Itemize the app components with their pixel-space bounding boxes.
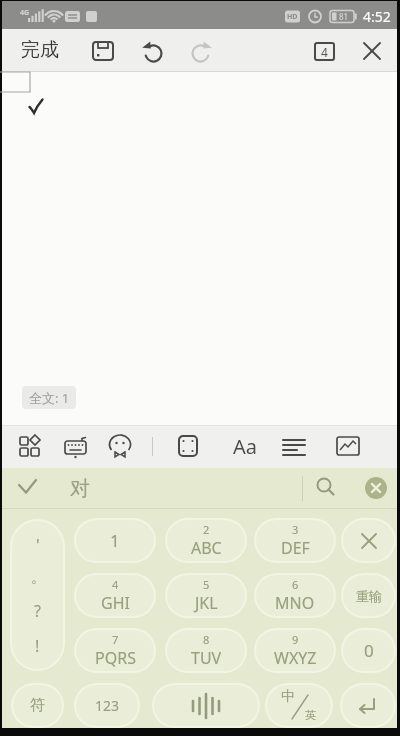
staticText: 0 bbox=[364, 639, 374, 662]
staticText: DEF bbox=[281, 537, 310, 559]
staticText: JKL bbox=[195, 592, 218, 614]
button[interactable] bbox=[280, 432, 308, 460]
staticText: 符 bbox=[30, 696, 45, 715]
button[interactable]: 重输 bbox=[341, 573, 396, 618]
staticText: 8 bbox=[203, 632, 210, 647]
staticText: 4:52 bbox=[363, 7, 391, 26]
staticText: 123 bbox=[95, 696, 120, 715]
button[interactable] bbox=[334, 432, 362, 460]
staticText: 2 bbox=[203, 522, 210, 537]
button[interactable]: 7 bbox=[74, 628, 156, 673]
button[interactable]: 对 bbox=[64, 472, 96, 504]
staticText: 对 bbox=[70, 476, 90, 501]
staticText: 1 bbox=[110, 529, 120, 552]
button[interactable] bbox=[62, 432, 90, 460]
button[interactable]: 中 bbox=[265, 683, 333, 728]
button[interactable] bbox=[14, 475, 44, 503]
staticText: 4 bbox=[112, 577, 119, 592]
button[interactable] bbox=[341, 518, 396, 563]
button[interactable] bbox=[358, 37, 386, 65]
button[interactable] bbox=[106, 432, 134, 460]
button[interactable] bbox=[174, 432, 202, 460]
button[interactable]: 0 bbox=[341, 628, 396, 673]
staticText: 英 bbox=[305, 708, 316, 722]
staticText: 5 bbox=[203, 577, 210, 592]
staticText: 81 bbox=[339, 11, 349, 22]
button[interactable]: 5 bbox=[165, 573, 247, 618]
staticText: 4 bbox=[321, 44, 328, 60]
button[interactable]: Aa bbox=[228, 432, 262, 460]
button[interactable]: 2 bbox=[165, 518, 247, 563]
staticText: GHI bbox=[101, 592, 130, 614]
staticText: PQRS bbox=[95, 647, 136, 669]
button[interactable]: 符 bbox=[11, 683, 64, 728]
staticText: 。 bbox=[31, 569, 45, 587]
button[interactable] bbox=[138, 37, 166, 65]
button[interactable]: 4 bbox=[74, 573, 156, 618]
staticText: 7 bbox=[112, 632, 119, 647]
staticText: 中 bbox=[281, 688, 295, 706]
button[interactable] bbox=[89, 37, 117, 65]
button[interactable]: 123 bbox=[74, 683, 140, 728]
button[interactable] bbox=[188, 37, 216, 65]
button[interactable]: 4 bbox=[314, 42, 335, 61]
staticText: 重输 bbox=[356, 588, 382, 604]
staticText: 6 bbox=[292, 577, 299, 592]
button[interactable]: 9 bbox=[254, 628, 336, 673]
button[interactable]: ' bbox=[10, 519, 65, 671]
staticText: 完成 bbox=[21, 38, 59, 62]
staticText: 4G bbox=[20, 8, 30, 18]
staticText: ' bbox=[36, 534, 40, 556]
staticText: TUV bbox=[191, 647, 222, 669]
staticText: ? bbox=[34, 600, 41, 622]
staticText: MNO bbox=[275, 592, 315, 614]
button[interactable]: 3 bbox=[254, 518, 336, 563]
button[interactable]: 6 bbox=[254, 573, 336, 618]
button[interactable]: 8 bbox=[165, 628, 247, 673]
staticText: 3 bbox=[292, 522, 299, 537]
button[interactable] bbox=[312, 474, 340, 502]
staticText: 全文: 1 bbox=[29, 389, 70, 407]
staticText: ! bbox=[35, 635, 40, 657]
staticText: WXYZ bbox=[274, 647, 317, 669]
staticText: Aa bbox=[233, 433, 257, 460]
button[interactable] bbox=[365, 477, 387, 499]
button[interactable] bbox=[16, 432, 44, 460]
staticText: 9 bbox=[292, 632, 299, 647]
button[interactable] bbox=[340, 683, 396, 728]
staticText: ABC bbox=[191, 537, 222, 559]
button[interactable] bbox=[152, 683, 260, 728]
button[interactable]: 1 bbox=[74, 518, 156, 563]
staticText: HD bbox=[287, 12, 298, 22]
button[interactable]: 完成 bbox=[10, 34, 70, 66]
